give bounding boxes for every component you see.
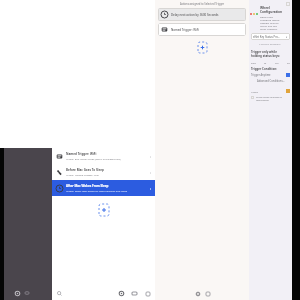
staticText: 3 actions assigned › — [259, 42, 282, 45]
staticText: ctrl — [275, 61, 279, 64]
staticText: eNet Key Status Pro... — [253, 35, 280, 39]
staticText: not fit into any — [260, 24, 278, 27]
button[interactable]: Before Mac Goes To Sleep — [52, 164, 155, 180]
staticText: Action: Run Apple Script (async in backg… — [66, 157, 121, 160]
button[interactable]: Search — [56, 290, 63, 297]
button[interactable]: Settings — [14, 290, 20, 296]
button[interactable]: Recents — [205, 291, 210, 296]
staticText: Action: Named Trigger: WiFi — [66, 173, 99, 176]
staticText: fn — [264, 61, 267, 64]
staticText: alt — [287, 61, 290, 64]
staticText: Named Trigger: WiFi — [171, 28, 200, 32]
button[interactable]: Battery — [24, 290, 30, 296]
staticText: description — [256, 98, 270, 101]
button[interactable]: Add action — [99, 204, 109, 216]
staticText: Trigger only while — [251, 50, 277, 54]
button[interactable]: Add action — [198, 42, 207, 53]
staticText: After Mac Wakes From Sleep — [66, 184, 109, 188]
button[interactable]: Show notes instead of — [251, 95, 290, 101]
staticText: Trigger Condition: — [251, 67, 277, 71]
button[interactable]: Close — [286, 2, 290, 6]
staticText: holding status keys: — [251, 54, 280, 58]
staticText: › — [150, 170, 152, 175]
staticText: Wheel — [260, 6, 270, 10]
staticText: shift — [251, 61, 256, 64]
staticText: ▾ — [286, 36, 288, 39]
button[interactable]: Home — [131, 290, 138, 297]
staticText: Trigger Anytime — [251, 73, 271, 77]
staticText: Named Trigger: WiFi — [66, 152, 97, 156]
staticText: › — [150, 186, 152, 191]
button[interactable]: Recents — [144, 290, 151, 297]
button[interactable]: Back — [118, 290, 125, 297]
staticText: configure device — [260, 18, 280, 21]
staticText: › — [150, 154, 152, 159]
staticText: Before Mac Goes To Sleep — [66, 168, 104, 172]
staticText: Show notes instead of — [256, 95, 282, 98]
staticText: triggers that do — [260, 21, 279, 24]
staticText: Advanced Conditions... — [257, 79, 285, 83]
staticText: other category — [260, 27, 278, 30]
button[interactable]: Delay next action by 3600 Seconds — [158, 8, 246, 21]
button[interactable]: Trigger Anytime — [251, 73, 290, 77]
staticText: Configuration — [260, 10, 283, 14]
button[interactable]: After Mac Wakes From Sleep — [52, 180, 155, 196]
staticText: Action: Delay next action by 3600 Second… — [66, 189, 128, 192]
button[interactable]: Named Trigger: WiFi — [158, 23, 246, 36]
staticText: Delay next action by 3600 Seconds — [171, 13, 219, 17]
button[interactable]: Named Trigger: WiFi — [52, 148, 155, 164]
button[interactable]: Settings — [195, 291, 200, 296]
button[interactable]: eNet Key Status Pro... — [251, 33, 290, 40]
staticText: Actions assigned to Selected Trigger — [180, 2, 225, 6]
staticText: Detect and — [260, 15, 273, 18]
staticText: Notes — [251, 90, 258, 93]
